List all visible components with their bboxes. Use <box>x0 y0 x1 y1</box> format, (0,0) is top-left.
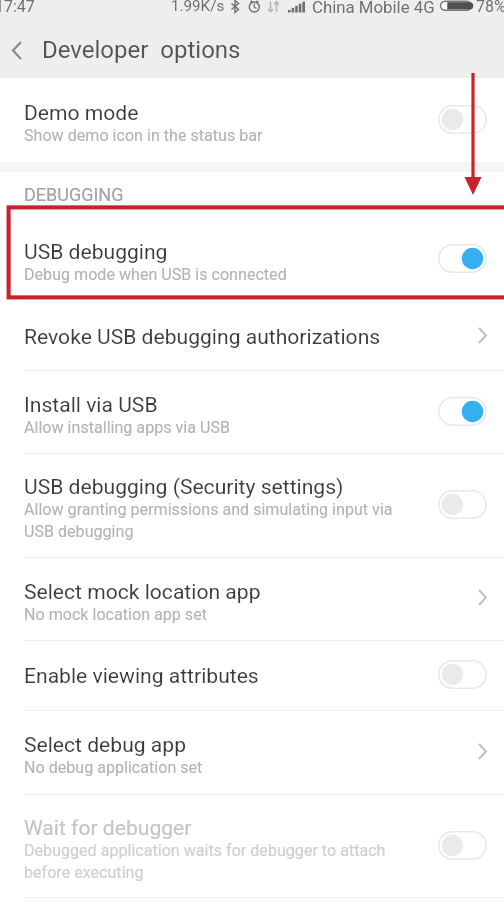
staticText: Demo mode <box>24 100 139 125</box>
staticText: Install via USB <box>24 392 158 417</box>
staticText: Debugged application waits for debugger … <box>24 841 386 882</box>
staticText: Select debug app <box>24 732 186 757</box>
staticText: No debug application set <box>24 758 203 777</box>
staticText: Allow granting permissions and simulatin… <box>24 500 393 541</box>
button[interactable]: Switch off <box>438 660 487 689</box>
staticText: China Mobile 4G <box>312 0 435 17</box>
button[interactable]: Select mock location app <box>0 558 504 640</box>
staticText: DEBUGGING <box>24 184 124 205</box>
button[interactable]: Select debug app <box>0 711 504 794</box>
staticText: Debug mode when USB is connected <box>24 265 287 284</box>
button[interactable]: Back <box>0 27 34 73</box>
staticText: USB debugging <box>24 239 168 264</box>
button[interactable]: Revoke USB debugging authorizations <box>0 303 504 370</box>
staticText: Enable viewing attributes <box>24 663 259 688</box>
button[interactable]: Switch off <box>438 831 487 860</box>
button[interactable]: Open <box>447 579 487 619</box>
staticText: No mock location app set <box>24 605 207 624</box>
button[interactable]: USB debugging <box>0 216 504 302</box>
button[interactable]: Install via USB <box>0 371 504 453</box>
button[interactable]: Open <box>447 733 487 773</box>
staticText: USB debugging (Security settings) <box>24 474 344 499</box>
button[interactable]: Wait for debugger <box>0 795 504 897</box>
button[interactable]: Switch off <box>438 105 487 134</box>
staticText: Show demo icon in the status bar <box>24 126 263 145</box>
staticText: 78% <box>476 0 504 16</box>
staticText: Allow installing apps via USB <box>24 418 230 437</box>
staticText: 1.99K/s <box>171 0 225 15</box>
button[interactable]: Open <box>447 317 487 357</box>
button[interactable]: USB debugging (Security settings) <box>0 454 504 557</box>
button[interactable]: Demo mode <box>0 78 504 162</box>
staticText: 17:47 <box>0 0 35 16</box>
staticText: Revoke USB debugging authorizations <box>24 324 381 349</box>
staticText: Wait for debugger <box>24 815 192 840</box>
button[interactable]: Switch on <box>438 244 487 273</box>
button[interactable]: Enable viewing attributes <box>0 641 504 710</box>
button[interactable]: Switch on <box>438 397 487 426</box>
staticText: Select mock location app <box>24 579 261 604</box>
staticText: Developer options <box>42 36 241 64</box>
button[interactable]: Switch off <box>438 490 487 519</box>
